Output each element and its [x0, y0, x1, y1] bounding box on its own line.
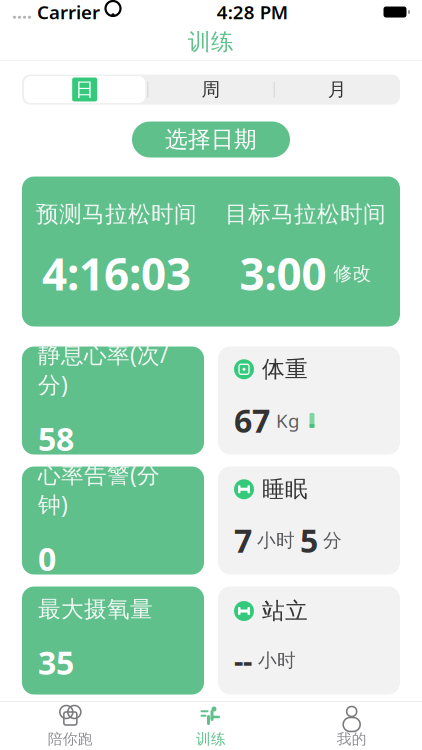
button[interactable]: 静息心率(次/分) — [22, 346, 204, 454]
staticText: 训练 — [196, 730, 226, 748]
staticText: 静息心率(次/分) — [38, 339, 168, 399]
staticText: 最大摄氧量 — [38, 595, 153, 623]
button[interactable]: 训练 — [141, 702, 281, 750]
button[interactable]: 站立 — [218, 586, 400, 694]
staticText: 睡眠 — [262, 475, 308, 503]
button[interactable]: 修改 — [333, 262, 371, 285]
staticText: 小时 — [257, 529, 295, 552]
staticText: 4:28 PM — [217, 0, 288, 24]
staticText: -- — [234, 641, 252, 680]
staticText: Kg — [276, 408, 299, 433]
button[interactable]: 月 — [275, 74, 400, 104]
button[interactable]: 最大摄氧量 — [22, 586, 204, 694]
button[interactable]: 我的 — [281, 702, 422, 750]
staticText: 小时 — [258, 649, 296, 672]
button[interactable]: 日 — [22, 74, 147, 104]
button[interactable]: 选择日期 — [132, 121, 290, 157]
staticText: 周 — [201, 78, 220, 101]
button[interactable]: 睡眠 — [218, 466, 400, 574]
staticText: 站立 — [262, 597, 308, 625]
staticText: 5 — [300, 519, 318, 562]
staticText: 35 — [38, 641, 74, 684]
staticText: 3:00 — [239, 244, 326, 303]
button[interactable]: 陪你跑 — [0, 702, 141, 750]
staticText: 58 — [38, 417, 74, 460]
staticText: 训练 — [188, 28, 234, 56]
staticText: 心率告警(分钟) — [38, 459, 160, 519]
staticText: 7 — [234, 519, 252, 562]
staticText: 4:16:03 — [42, 244, 191, 303]
staticText: 67 — [234, 399, 270, 442]
staticText: 日 — [75, 78, 94, 101]
button[interactable]: 心率告警(分钟) — [22, 466, 204, 574]
staticText: 分 — [323, 529, 342, 552]
staticText: 目标马拉松时间 — [225, 200, 386, 228]
staticText: .... — [12, 0, 32, 23]
staticText: 我的 — [337, 730, 367, 748]
staticText: 陪你跑 — [48, 730, 93, 748]
staticText: 预测马拉松时间 — [36, 200, 197, 228]
staticText: 选择日期 — [165, 126, 257, 153]
staticText: 修改 — [333, 262, 371, 285]
button[interactable]: 周 — [148, 74, 274, 104]
staticText: 月 — [328, 78, 347, 101]
button[interactable]: 体重 — [218, 346, 400, 454]
staticText: Carrier — [32, 0, 105, 24]
staticText: 0 — [38, 537, 56, 580]
staticText: 体重 — [262, 355, 308, 383]
